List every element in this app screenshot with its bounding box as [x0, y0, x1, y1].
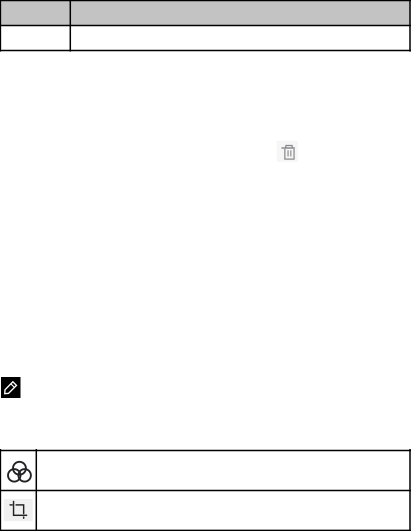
button[interactable]: Delete	[277, 141, 298, 162]
button[interactable]: Adjust colour	[2, 453, 36, 491]
button[interactable]: Edit	[1, 377, 20, 398]
button[interactable]: Crop	[4, 499, 33, 521]
